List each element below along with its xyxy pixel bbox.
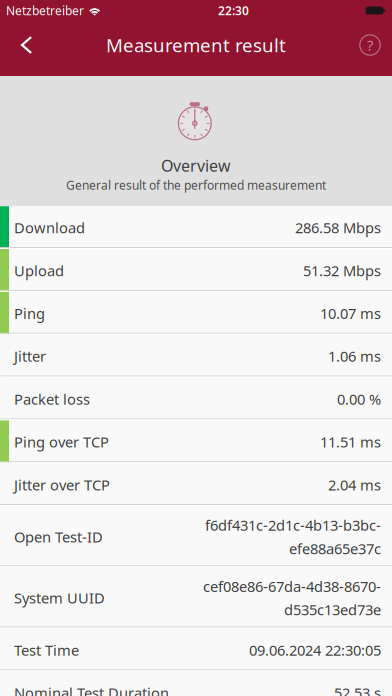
staticText: d535c13ed73e [284,600,381,619]
staticText: 286.58 Mbps [295,218,381,237]
staticText: 1.06 ms [328,346,381,366]
staticText: efe88a65e37c [289,539,381,558]
staticText: cef08e86-67da-4d38-8670- [203,576,381,596]
staticText: Test Time [14,640,79,660]
staticText: Netzbetreiber [6,2,84,18]
staticText: 51.32 Mbps [303,261,381,280]
staticText: Ping [14,304,45,323]
staticText: 09.06.2024 22:30:05 [249,640,381,660]
button[interactable]: Back [2,21,51,69]
button[interactable]: Packet loss [0,378,392,420]
staticText: Download [14,218,85,237]
staticText: f6df431c-2d1c-4b13-b3bc- [205,515,381,535]
button[interactable]: Open Test-ID [0,506,392,567]
staticText: General result of the performed measurem… [66,177,326,193]
staticText: 52.53 s [334,683,381,696]
staticText: Jitter over TCP [14,475,110,494]
staticText: ? [367,35,373,55]
staticText: Packet loss [14,389,90,409]
button[interactable]: Help [350,21,390,69]
button[interactable]: Upload [0,249,392,292]
staticText: Jitter [14,346,46,366]
button[interactable]: Ping over TCP [0,420,392,463]
staticText: 22:30 [218,2,249,18]
staticText: Overview [161,155,231,176]
staticText: 10.07 ms [320,304,381,323]
button[interactable]: Jitter over TCP [0,463,392,506]
button[interactable]: Test Time [0,628,392,671]
staticText: Open Test-ID [14,527,103,546]
staticText: 11.51 ms [320,432,381,452]
button[interactable]: Jitter [0,335,392,378]
staticText: Nominal Test Duration [14,683,169,696]
button[interactable]: Download [0,206,392,249]
button[interactable]: Ping [0,292,392,335]
staticText: Ping over TCP [14,432,109,452]
button[interactable]: System UUID [0,567,392,628]
button[interactable]: Nominal Test Duration [0,671,392,696]
staticText: Upload [14,261,64,280]
staticText: 2.04 ms [328,475,381,494]
staticText: 0.00 % [337,389,381,409]
staticText: Measurement result [106,33,286,57]
staticText: System UUID [14,588,105,608]
